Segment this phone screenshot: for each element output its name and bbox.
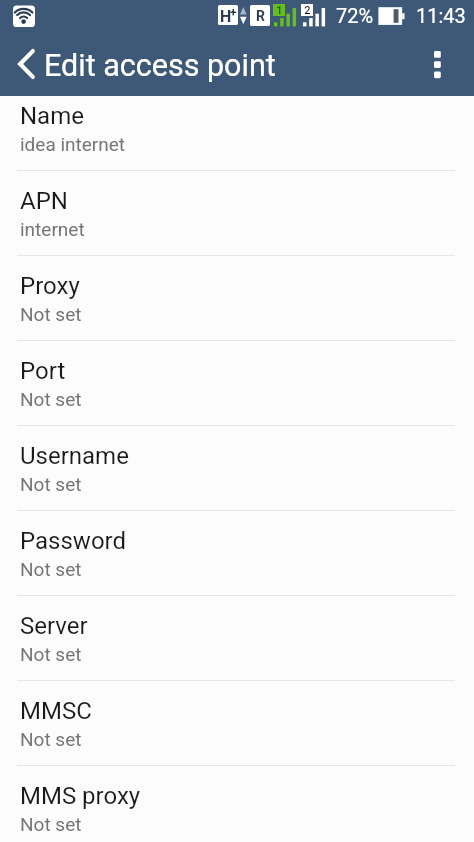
staticText: H: [220, 7, 232, 25]
staticText: +: [230, 6, 237, 20]
staticText: 72%: [336, 4, 374, 27]
staticText: Not set: [20, 473, 82, 495]
button[interactable]: Username: [0, 426, 474, 511]
button[interactable]: Name: [0, 86, 474, 171]
staticText: Not set: [20, 388, 82, 410]
staticText: 1: [276, 4, 283, 16]
button[interactable]: More options: [413, 41, 461, 89]
staticText: 11:43: [416, 4, 466, 27]
button[interactable]: Server: [0, 596, 474, 681]
button[interactable]: Password: [0, 511, 474, 596]
staticText: internet: [20, 218, 85, 240]
staticText: Edit access point: [44, 48, 276, 84]
staticText: Not set: [20, 303, 82, 325]
staticText: Username: [20, 442, 129, 470]
button[interactable]: APN: [0, 171, 474, 256]
staticText: idea internet: [20, 133, 126, 155]
staticText: MMSC: [20, 697, 92, 725]
staticText: Password: [20, 527, 127, 555]
button[interactable]: Proxy: [0, 256, 474, 341]
staticText: 2: [304, 4, 311, 16]
button[interactable]: Navigate up: [2, 41, 48, 89]
staticText: Name: [20, 102, 84, 130]
staticText: MMS proxy: [20, 782, 141, 810]
staticText: Server: [20, 612, 88, 640]
button[interactable]: Port: [0, 341, 474, 426]
staticText: R: [256, 8, 265, 24]
staticText: Not set: [20, 813, 82, 835]
button[interactable]: MMS proxy: [0, 766, 474, 842]
staticText: Port: [20, 357, 66, 385]
staticText: Not set: [20, 728, 82, 750]
staticText: Not set: [20, 643, 82, 665]
button[interactable]: MMSC: [0, 681, 474, 766]
staticText: Not set: [20, 558, 82, 580]
staticText: Proxy: [20, 272, 80, 300]
staticText: APN: [20, 187, 68, 215]
